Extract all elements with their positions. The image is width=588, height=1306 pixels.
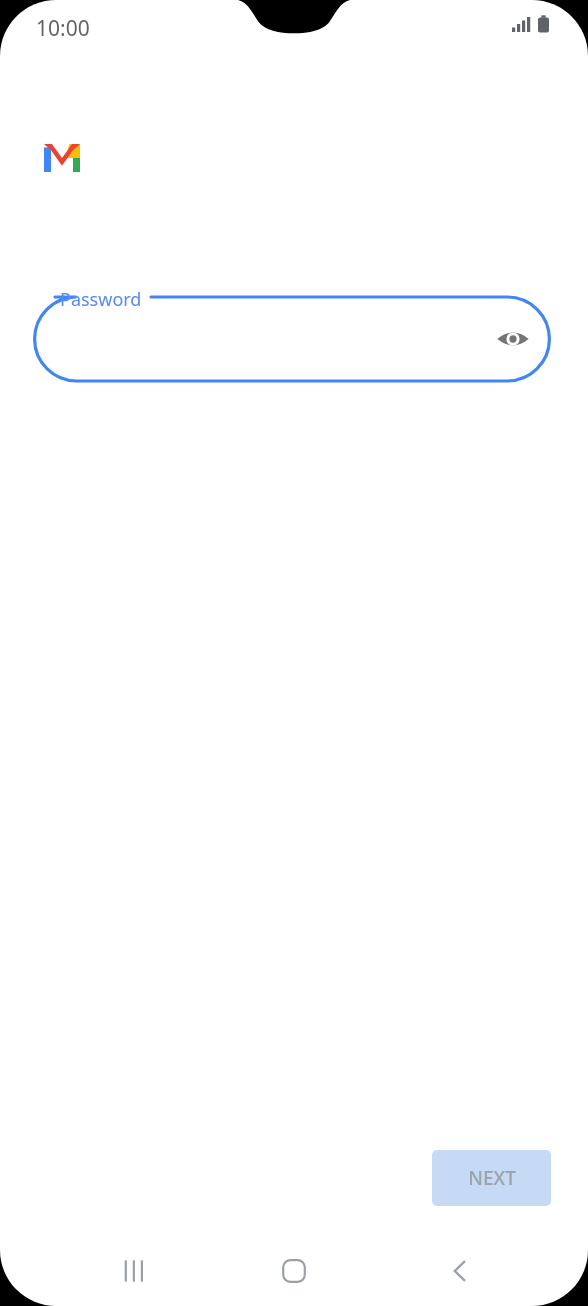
button[interactable]: Show password [489, 315, 537, 363]
staticText: 10:00 [36, 14, 90, 43]
button[interactable]: NEXT [432, 1150, 551, 1206]
button[interactable]: Recent apps [103, 1241, 163, 1301]
button[interactable]: Back [430, 1241, 490, 1301]
button[interactable]: Home [264, 1241, 324, 1301]
staticText: NEXT [468, 1165, 516, 1191]
button[interactable]: Password [33, 289, 551, 389]
staticText: Password [60, 287, 142, 312]
other: Gmail [44, 144, 80, 172]
